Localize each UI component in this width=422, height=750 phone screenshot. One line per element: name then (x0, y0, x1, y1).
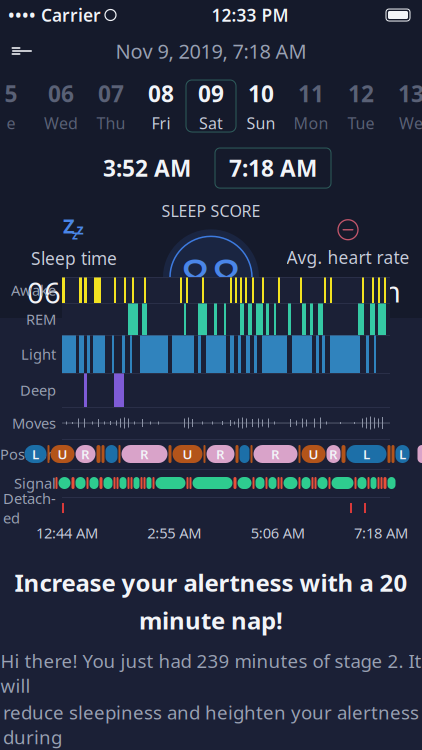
staticText: e (6, 112, 15, 134)
staticText: z (72, 227, 78, 243)
button[interactable]: 3:52 AM (91, 148, 203, 188)
staticText: Sat (199, 112, 223, 134)
staticText: Increase your alertness with a 20 (14, 566, 407, 598)
staticText: 06:32h (27, 273, 121, 312)
staticText: R (81, 445, 90, 463)
staticText: Tue (347, 112, 374, 134)
staticText: Fri (151, 112, 170, 134)
button[interactable]: 12 (336, 80, 386, 132)
staticText: •••• Carrier (8, 3, 101, 26)
staticText: Hi there! You just had 239 minutes of st… (0, 648, 421, 698)
staticText: R (216, 445, 225, 463)
staticText: Awake (11, 280, 56, 300)
staticText: Sleep time (31, 247, 117, 270)
staticText: 2:55 AM (147, 523, 201, 542)
staticText: U (308, 445, 318, 463)
staticText: 11 (298, 78, 324, 108)
button[interactable]: 06 (36, 80, 86, 132)
staticText: 06 (48, 78, 74, 108)
staticText: minute nap! (139, 604, 283, 636)
staticText: U (182, 445, 192, 463)
staticText: SLEEP SCORE (161, 200, 260, 221)
button[interactable]: 09 (186, 80, 236, 132)
button[interactable]: 10 (236, 80, 286, 132)
staticText: REM (26, 309, 56, 329)
staticText: 13 (398, 78, 422, 108)
staticText: reduce sleepiness and heighten your aler… (3, 700, 419, 749)
staticText: 5 (4, 78, 17, 108)
button[interactable]: 13 (386, 80, 422, 132)
staticText: Deep (20, 380, 56, 400)
staticText: Avg. heart rate (286, 246, 409, 269)
staticText: Sun (246, 112, 275, 134)
staticText: 10 (248, 78, 274, 108)
staticText: R (329, 445, 338, 463)
staticText: Light (21, 344, 56, 364)
staticText: Position (0, 444, 56, 464)
button[interactable]: Back (0, 34, 44, 68)
staticText: 08 (148, 78, 174, 108)
staticText: Wed (44, 112, 78, 134)
staticText: L (399, 445, 406, 463)
staticText: 12:44 AM (36, 523, 98, 542)
staticText: Detached (3, 488, 56, 527)
staticText: 7:18 AM (229, 153, 317, 183)
button[interactable]: 7:18 AM (215, 148, 331, 188)
button[interactable]: 5 (0, 80, 36, 132)
staticText: R (140, 445, 149, 463)
staticText: 88 (180, 242, 242, 313)
staticText: z (76, 219, 83, 238)
staticText: 12 (348, 78, 374, 108)
staticText: We (399, 112, 422, 134)
staticText: 67 bpm (295, 272, 400, 311)
staticText: Thu (96, 112, 125, 134)
staticText: 09 (198, 78, 224, 108)
staticText: Nov 9, 2019, 7:18 AM (115, 38, 306, 64)
button[interactable]: 08 (136, 80, 186, 132)
button[interactable]: 07 (86, 80, 136, 132)
staticText: Z (63, 212, 75, 239)
staticText: 3:52 AM (103, 153, 191, 183)
staticText: 5:06 AM (251, 523, 305, 542)
staticText: Moves (12, 413, 56, 433)
staticText: Signal (14, 473, 56, 493)
staticText: 7:18 AM (354, 523, 408, 542)
staticText: 12:33 PM (211, 3, 288, 26)
staticText: 07 (98, 78, 124, 108)
staticText: Mon (293, 112, 328, 134)
staticText: U (57, 445, 67, 463)
staticText: L (32, 445, 39, 463)
button[interactable]: 11 (286, 80, 336, 132)
staticText: L (363, 445, 370, 463)
staticText: R (271, 445, 280, 463)
